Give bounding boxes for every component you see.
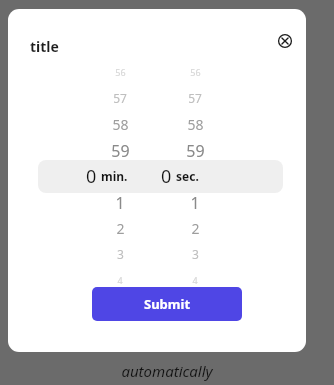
staticText: 3 xyxy=(117,246,124,262)
staticText: 1 xyxy=(115,192,125,212)
staticText: 0 xyxy=(86,164,97,188)
button[interactable]: 56 xyxy=(8,64,306,264)
staticText: 57 xyxy=(188,90,202,106)
staticText: 3 xyxy=(192,246,199,262)
staticText: Submit xyxy=(144,295,191,313)
staticText: 56 xyxy=(115,66,126,78)
button[interactable]: Close xyxy=(272,28,298,54)
button[interactable]: 56 xyxy=(8,64,306,264)
staticText: 57 xyxy=(113,90,127,106)
staticText: 56 xyxy=(190,66,201,78)
staticText: 4 xyxy=(117,274,123,286)
staticText: 4 xyxy=(192,274,198,286)
staticText: 59 xyxy=(111,140,130,160)
staticText: 0 xyxy=(161,164,172,188)
staticText: automatically xyxy=(121,361,213,381)
button[interactable]: Submit xyxy=(92,287,242,321)
staticText: 58 xyxy=(112,115,129,134)
staticText: title xyxy=(30,37,59,56)
staticText: 1 xyxy=(190,192,200,212)
staticText: 59 xyxy=(186,140,205,160)
staticText: sec. xyxy=(176,168,199,184)
staticText: 58 xyxy=(187,115,204,134)
staticText: 2 xyxy=(191,219,200,238)
staticText: 2 xyxy=(116,219,125,238)
staticText: min. xyxy=(101,168,128,184)
